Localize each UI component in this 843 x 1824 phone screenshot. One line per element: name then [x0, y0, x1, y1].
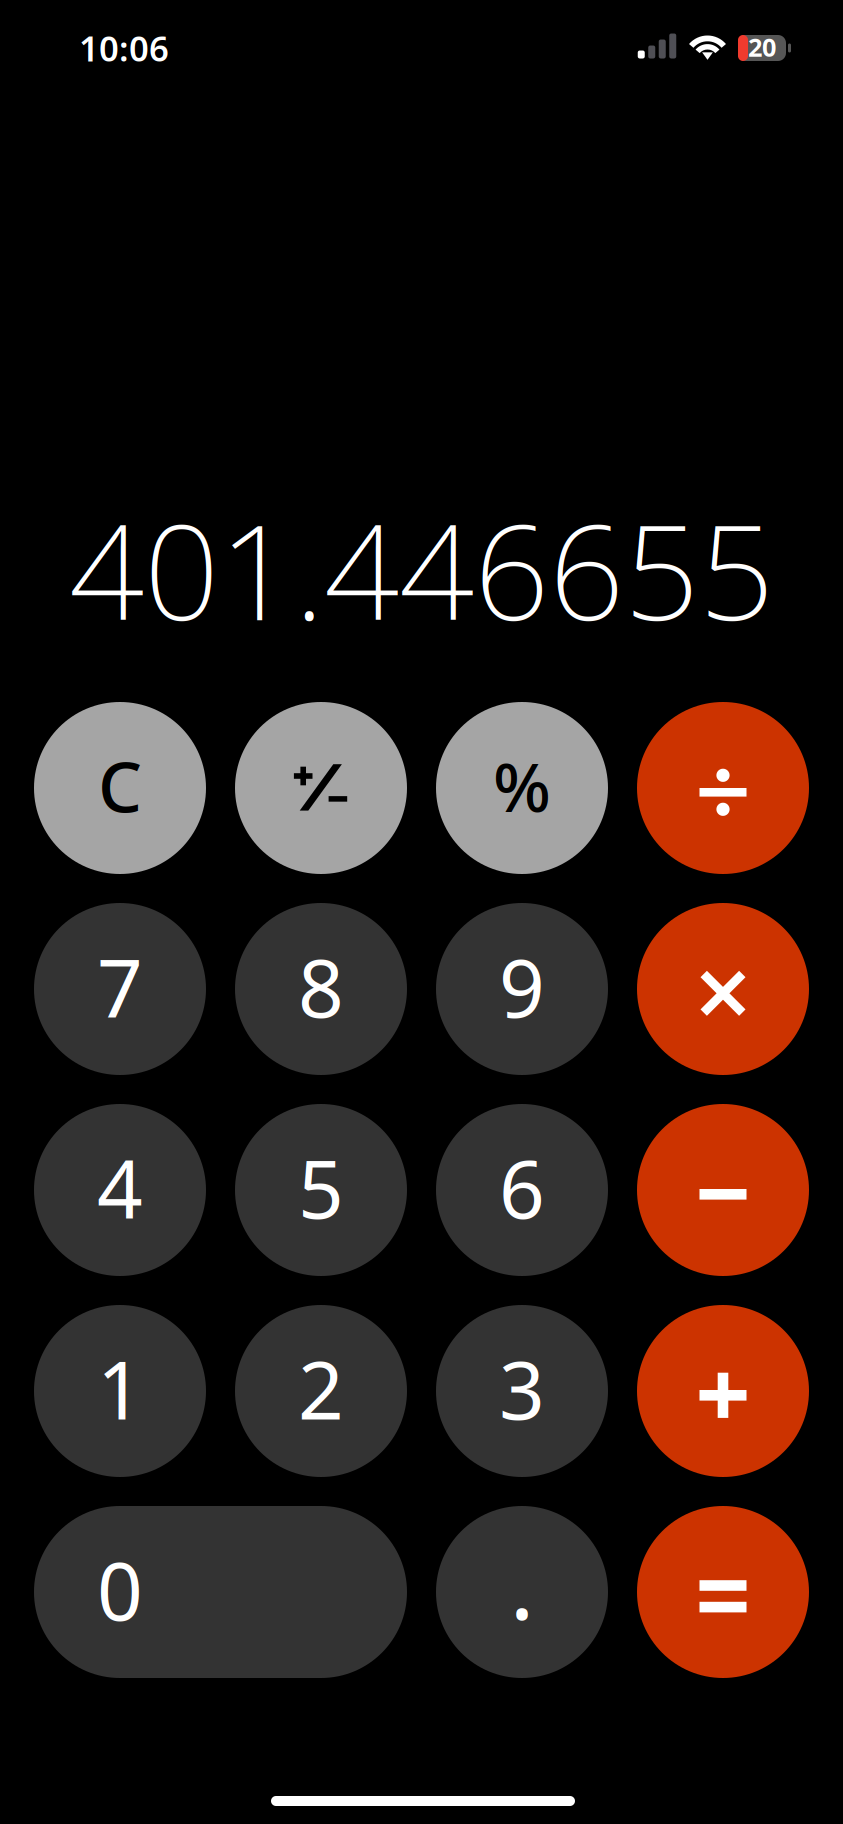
button[interactable]: 0 [34, 1506, 407, 1678]
staticText: 20 [748, 30, 776, 64]
button[interactable]: 2 [235, 1305, 407, 1477]
button[interactable]: 1 [34, 1305, 206, 1477]
staticText: 5 [298, 1134, 344, 1241]
staticText: . [509, 1521, 534, 1645]
button[interactable]: 7 [34, 903, 206, 1075]
button[interactable]: 6 [436, 1104, 608, 1276]
staticText: 6 [499, 1134, 545, 1241]
button[interactable]: Divide [637, 702, 809, 874]
button[interactable]: 9 [436, 903, 608, 1075]
staticText: % [493, 740, 551, 831]
button[interactable]: % [436, 702, 608, 874]
staticText: 1 [97, 1335, 143, 1442]
button[interactable]: 3 [436, 1305, 608, 1477]
staticText: 0 [97, 1536, 143, 1643]
staticText: 401.446655 [69, 481, 774, 657]
staticText: 4 [97, 1134, 143, 1241]
button[interactable]: 4 [34, 1104, 206, 1276]
button[interactable]: Multiply [637, 903, 809, 1075]
staticText: 9 [499, 933, 545, 1040]
staticText: C [98, 739, 142, 832]
button[interactable]: Minus [637, 1104, 809, 1276]
staticText: 7 [97, 933, 143, 1040]
staticText: 8 [298, 933, 344, 1040]
staticText: 10:06 [79, 25, 169, 71]
button[interactable]: 8 [235, 903, 407, 1075]
button[interactable]: Plus [637, 1305, 809, 1477]
button[interactable]: Plus Minus [235, 702, 407, 874]
button[interactable]: . [436, 1506, 608, 1678]
staticText: 3 [499, 1335, 545, 1442]
staticText: 2 [298, 1335, 344, 1442]
button[interactable]: 5 [235, 1104, 407, 1276]
button[interactable]: C [34, 702, 206, 874]
button[interactable]: Equals [637, 1506, 809, 1678]
